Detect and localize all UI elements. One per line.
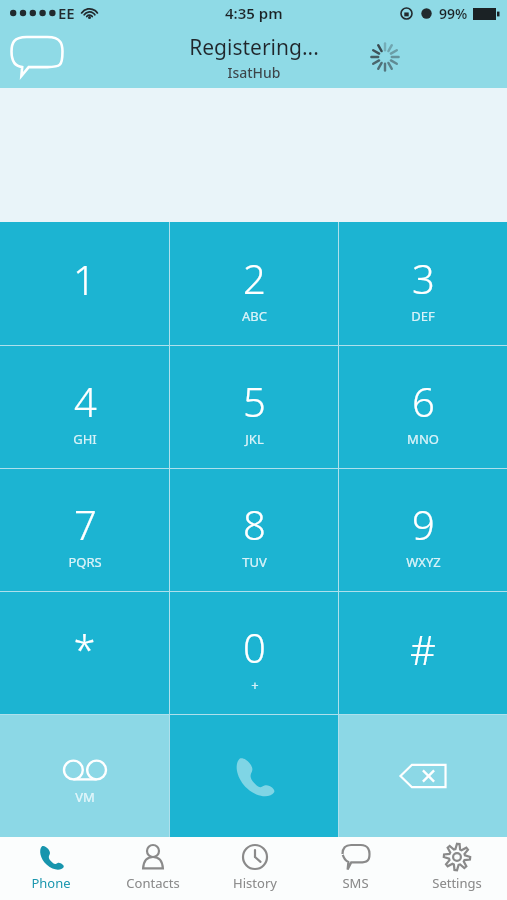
staticText: PQRS [68,553,102,571]
button[interactable]: 9 [339,469,507,591]
staticText: JKL [245,430,264,448]
staticText: History [233,874,277,892]
staticText: Settings [432,874,482,892]
staticText: DEF [411,307,435,325]
staticText: Registering... [189,33,319,62]
staticText: Phone [31,874,71,892]
button[interactable]: * [0,592,169,714]
button[interactable]: SMS [305,837,406,900]
staticText: 7 [74,497,97,551]
staticText: ABC [242,307,267,325]
staticText: WXYZ [406,553,441,571]
staticText: SMS [342,874,369,892]
button[interactable]: 7 [0,469,169,591]
staticText: 99% [439,4,468,23]
button[interactable]: Messages [8,33,66,81]
button[interactable]: Contacts [102,837,204,900]
button[interactable]: 0 [170,592,338,714]
staticText: VM [75,788,95,806]
button[interactable]: 3 [339,222,507,345]
button[interactable]: Settings [406,837,507,900]
staticText: # [410,622,436,676]
staticText: 9 [412,497,435,551]
staticText: 6 [412,374,435,428]
button[interactable]: 1 [0,222,169,345]
staticText: TUV [242,553,267,571]
button[interactable]: 8 [170,469,338,591]
staticText: 8 [243,497,266,551]
staticText: IsatHub [227,63,281,82]
staticText: Contacts [126,874,180,892]
button[interactable]: Call [170,715,338,837]
staticText: * [73,622,96,676]
staticText: 5 [243,374,266,428]
button[interactable]: Phone [0,837,102,900]
staticText: 3 [412,251,435,305]
button[interactable]: History [204,837,305,900]
staticText: EE [58,3,75,23]
button[interactable]: Voicemail [0,715,169,837]
staticText: 0 [243,620,266,674]
button[interactable]: Delete [339,715,507,837]
staticText: 1 [73,252,96,306]
button[interactable]: 2 [170,222,338,345]
staticText: 2 [243,251,266,305]
button[interactable]: 5 [170,346,338,468]
staticText: MNO [407,430,439,448]
staticText: GHI [73,430,97,448]
staticText: 4:35 pm [225,3,283,23]
staticText: 4 [74,374,97,428]
button[interactable]: # [339,592,507,714]
staticText: + [251,676,259,694]
button[interactable]: 6 [339,346,507,468]
button[interactable]: 4 [0,346,169,468]
